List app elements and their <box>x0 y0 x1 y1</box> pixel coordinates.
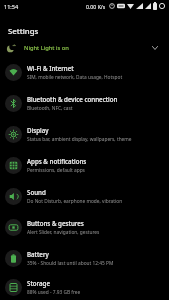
staticText: SIM, mobile network, Data usage, Hotspot <box>27 74 123 81</box>
staticText: Settings <box>8 26 39 37</box>
button[interactable]: Apps & notifications <box>0 150 169 181</box>
staticText: Wi-Fi & Internet <box>27 64 74 72</box>
staticText: Sound <box>27 188 46 196</box>
staticText: Display <box>27 126 49 134</box>
button[interactable]: Night Light is on <box>0 38 169 57</box>
staticText: 0.00 K/s <box>86 3 106 10</box>
staticText: Bluetooth, NFC, cast <box>27 105 73 112</box>
staticText: Permissions, default apps <box>27 167 85 174</box>
button[interactable]: Storage <box>0 274 169 300</box>
button[interactable]: Wi-Fi & Internet <box>0 57 169 88</box>
button[interactable]: Sound <box>0 181 169 212</box>
button[interactable]: Display <box>0 119 169 150</box>
staticText: Storage <box>27 279 50 287</box>
staticText: Do Not Disturb, earphone mode, vibration <box>27 198 123 205</box>
staticText: 88% used - 7.93 GB free <box>27 289 81 296</box>
staticText: Battery <box>27 250 49 258</box>
staticText: Alert Slider, navigation, gestures <box>27 229 100 236</box>
button[interactable]: Buttons & gestures <box>0 212 169 243</box>
staticText: Status bar, ambient display, wallpapers,… <box>27 136 132 143</box>
staticText: Buttons & gestures <box>27 219 84 227</box>
staticText: Apps & notifications <box>27 157 87 165</box>
staticText: 11:54 <box>4 3 19 10</box>
staticText: 35% - Should last until about 12:45 PM <box>27 260 114 267</box>
staticText: Night Light is on <box>24 44 69 52</box>
button[interactable]: Battery <box>0 243 169 274</box>
staticText: Bluetooth & device connection <box>27 95 118 103</box>
button[interactable]: Bluetooth & device connection <box>0 88 169 119</box>
